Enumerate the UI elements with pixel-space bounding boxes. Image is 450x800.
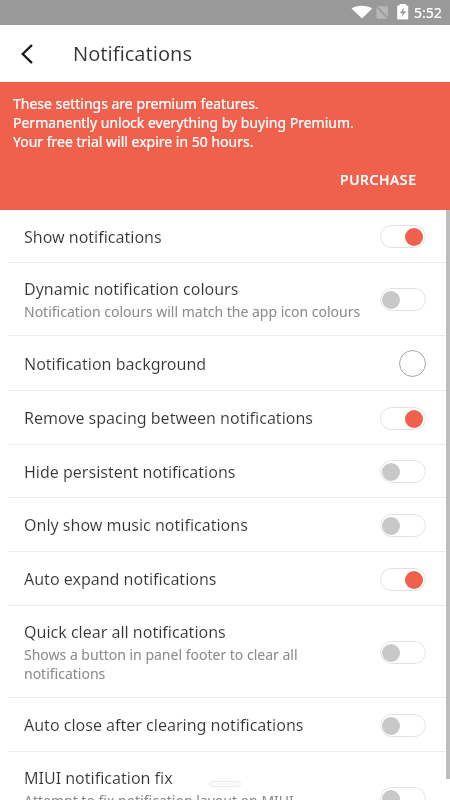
button[interactable]: Only show music notifications (0, 498, 450, 552)
button[interactable]: Auto close after clearing notifications (0, 698, 450, 752)
staticText: Hide persistent notifications (24, 461, 236, 483)
staticText: Shows a button in panel footer to clear … (24, 645, 309, 683)
button[interactable]: Hide persistent notifications (0, 445, 450, 498)
staticText: Dynamic notification colours (24, 278, 239, 300)
staticText: Show notifications (24, 226, 162, 248)
staticText: Attempt to fix notification layout on MI… (24, 791, 309, 800)
button[interactable]: PURCHASE (332, 166, 425, 193)
button[interactable]: Remove spacing between notifications (0, 391, 450, 445)
button[interactable]: Notification background (0, 336, 450, 391)
staticText: Notification colours will match the app … (24, 302, 361, 321)
staticText: Permanently unlock everything by buying … (13, 113, 354, 132)
button[interactable]: Back (5, 32, 49, 76)
staticText: Only show music notifications (24, 514, 248, 536)
staticText: MIUI notification fix (24, 767, 173, 789)
button[interactable]: Auto expand notifications (0, 552, 450, 606)
staticText: Quick clear all notifications (24, 621, 226, 643)
button[interactable]: Show notifications (0, 210, 450, 263)
staticText: Auto close after clearing notifications (24, 714, 304, 736)
staticText: PURCHASE (340, 170, 417, 189)
staticText: Auto expand notifications (24, 568, 217, 590)
button[interactable]: Quick clear all notifications (0, 606, 450, 698)
staticText: Your free trial will expire in 50 hours. (13, 132, 254, 151)
staticText: 5:52 (414, 3, 442, 22)
staticText: These settings are premium features. (13, 94, 259, 113)
button[interactable]: Dynamic notification colours (0, 263, 450, 336)
staticText: Notification background (24, 353, 207, 375)
button[interactable]: MIUI notification fix (0, 752, 450, 800)
staticText: Notifications (73, 40, 192, 67)
staticText: Remove spacing between notifications (24, 407, 313, 429)
